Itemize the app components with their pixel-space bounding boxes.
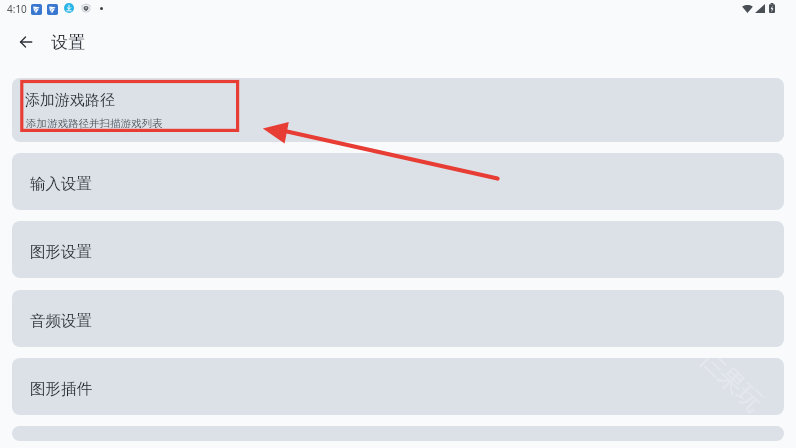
button[interactable]: 音频设置 (12, 290, 784, 347)
button[interactable]: 添加游戏路径 (12, 78, 784, 142)
staticText: 图形设置 (30, 242, 92, 262)
staticText: 图形插件 (30, 379, 92, 399)
button[interactable]: Back (12, 28, 40, 56)
staticText: 设置 (51, 32, 85, 53)
button[interactable]: 仨果玩 (12, 358, 784, 415)
staticText: 添加游戏路径 (25, 91, 115, 110)
button[interactable]: 输入设置 (12, 153, 784, 210)
button[interactable]: 图形设置 (12, 221, 784, 278)
staticText: 添加游戏路径并扫描游戏列表 (26, 117, 163, 130)
staticText: 4:10 (7, 2, 27, 16)
staticText: 音频设置 (30, 311, 92, 331)
staticText: 输入设置 (30, 174, 92, 194)
